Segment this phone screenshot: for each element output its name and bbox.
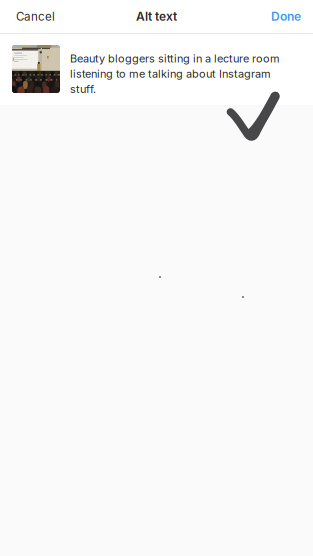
button[interactable]: Beauty bloggers sitting in a lecture roo… bbox=[0, 34, 313, 106]
staticText: Beauty bloggers sitting in a lecture roo… bbox=[70, 52, 280, 96]
staticText: Done bbox=[271, 9, 301, 24]
staticText: Cancel bbox=[16, 9, 55, 23]
button[interactable]: Done bbox=[259, 0, 313, 33]
staticText: Alt text bbox=[136, 9, 177, 24]
button[interactable]: Cancel bbox=[0, 0, 67, 33]
